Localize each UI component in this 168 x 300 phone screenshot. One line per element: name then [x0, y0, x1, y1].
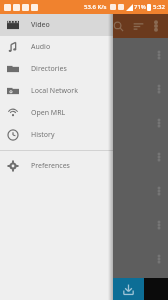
button[interactable]: Item menu: [153, 219, 165, 231]
button[interactable]: More options: [148, 18, 164, 34]
button[interactable]: Item menu: [0, 208, 168, 242]
staticText: Directories: [31, 64, 67, 74]
button[interactable]: Item menu: [153, 83, 165, 95]
staticText: Video: [31, 20, 50, 30]
button[interactable]: Download: [112, 278, 144, 300]
staticText: 5:32: [153, 3, 165, 11]
button[interactable]: Audio: [0, 36, 113, 58]
button[interactable]: Item menu: [0, 242, 168, 276]
button[interactable]: Item menu: [153, 253, 165, 265]
button[interactable]: Item menu: [153, 49, 165, 61]
button[interactable]: Sort: [128, 16, 148, 36]
button[interactable]: Item menu: [153, 185, 165, 197]
button[interactable]: sion_1: [0, 140, 168, 174]
button[interactable]: Open MRL: [0, 102, 113, 124]
staticText: 53.6 K/s: [84, 3, 107, 11]
staticText: History: [31, 130, 55, 140]
button[interactable]: Directories: [0, 58, 113, 80]
staticText: 71%: [134, 3, 146, 11]
button[interactable]: Item menu: [0, 106, 168, 140]
button[interactable]: Item menu: [0, 72, 168, 106]
button[interactable]: Item menu: [153, 151, 165, 163]
button[interactable]: History: [0, 124, 113, 146]
button[interactable]: Search: [108, 16, 128, 36]
staticText: Preferences: [31, 161, 70, 171]
button[interactable]: Item menu: [153, 117, 165, 129]
button[interactable]: Item menu: [0, 38, 168, 72]
button[interactable]: Video: [0, 14, 113, 36]
staticText: Open MRL: [31, 108, 66, 118]
button[interactable]: Item menu: [0, 174, 168, 208]
staticText: Local Network: [31, 86, 78, 96]
button[interactable]: Local Network: [0, 80, 113, 102]
staticText: Audio: [31, 42, 51, 52]
staticText: sion_1: [6, 153, 24, 161]
button[interactable]: Preferences: [0, 155, 113, 177]
